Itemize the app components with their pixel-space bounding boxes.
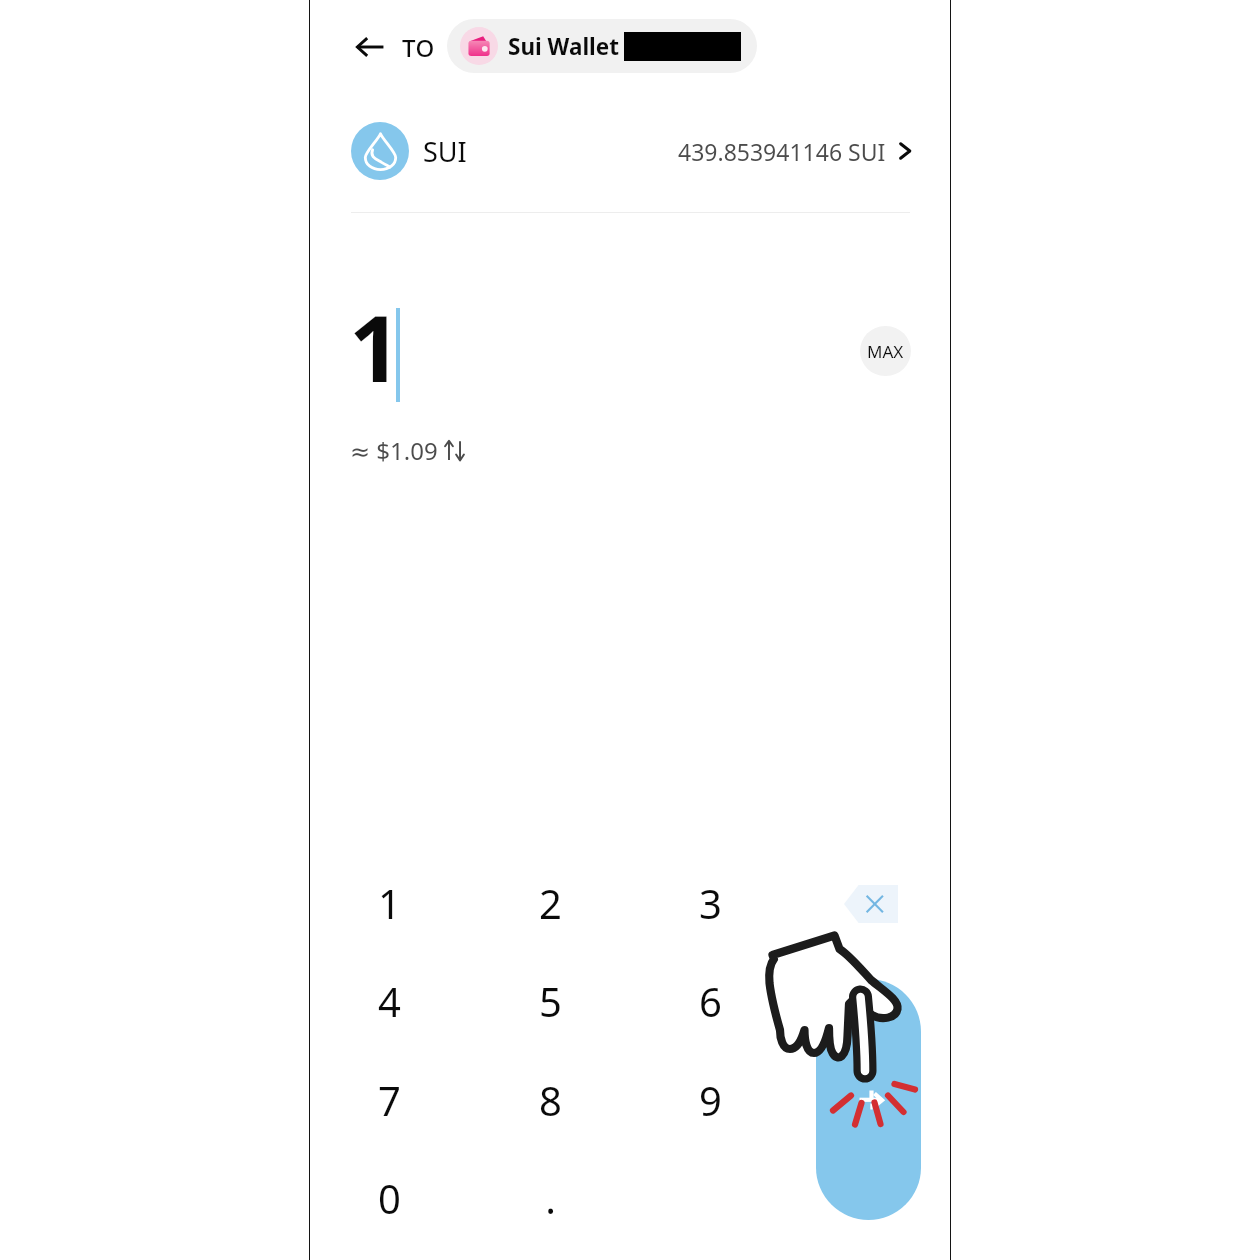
button[interactable]: 3: [656, 857, 764, 949]
staticText: TO: [402, 31, 435, 64]
staticText: 4: [378, 974, 401, 1028]
staticText: 7: [378, 1073, 401, 1127]
staticText: 6: [699, 974, 722, 1028]
staticText: 1: [349, 285, 402, 409]
button[interactable]: 8: [496, 1054, 604, 1146]
button[interactable]: .: [496, 1152, 604, 1244]
staticText: ≈ $1.09: [350, 434, 438, 466]
staticText: 8: [539, 1073, 562, 1127]
staticText: 5: [539, 974, 562, 1028]
button[interactable]: 4: [335, 955, 443, 1047]
staticText: Sui Wallet: [508, 31, 619, 62]
staticText: .: [545, 1171, 556, 1225]
button[interactable]: 1: [335, 857, 443, 949]
button[interactable]: 5: [496, 955, 604, 1047]
button[interactable]: SUI: [310, 116, 950, 186]
button[interactable]: Send: [816, 979, 921, 1220]
staticText: 9: [699, 1073, 722, 1127]
button[interactable]: Backspace: [830, 874, 912, 934]
staticText: 3: [699, 876, 722, 930]
staticText: 1: [378, 876, 401, 930]
button[interactable]: 9: [656, 1054, 764, 1146]
staticText: SUI: [423, 133, 467, 170]
button[interactable]: 2: [496, 857, 604, 949]
button[interactable]: 7: [335, 1054, 443, 1146]
button[interactable]: Back: [348, 26, 392, 68]
staticText: 439.853941146 SUI: [678, 136, 886, 167]
button[interactable]: MAX: [860, 326, 911, 376]
staticText: MAX: [867, 340, 904, 363]
button[interactable]: 0: [335, 1152, 443, 1244]
button[interactable]: Sui Wallet: [447, 19, 757, 73]
staticText: 2: [539, 876, 562, 930]
button[interactable]: 6: [656, 955, 764, 1047]
staticText: 0: [378, 1171, 401, 1225]
